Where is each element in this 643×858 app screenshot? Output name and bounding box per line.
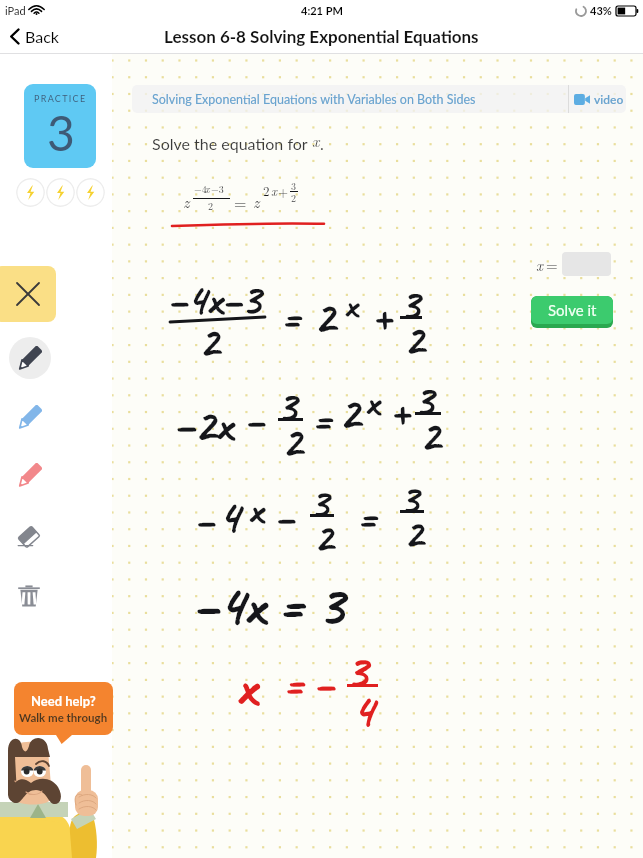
staticText: 3 [47,104,75,162]
button[interactable]: Energy [76,178,105,207]
button[interactable]: Eraser [10,519,48,557]
staticText: x [205,182,210,196]
staticText: 2 [314,511,333,564]
staticText: 3 [400,277,420,332]
staticText: Solving Exponential Equations with Varia… [152,92,476,107]
staticText: x [536,254,543,275]
staticText: 4 [218,486,240,546]
staticText: Walk me through [19,711,108,725]
staticText: 3 [400,473,419,526]
staticText: 2 [404,312,424,367]
staticText: 3 [291,179,296,193]
button[interactable]: Pen [9,396,51,438]
staticText: Solve the equation for [152,134,312,153]
staticText: + [390,383,410,438]
staticText: x [344,282,357,329]
staticText: x [248,483,263,536]
button[interactable]: Pen [9,454,51,496]
button[interactable]: Pen [9,337,51,379]
staticText: – [274,489,294,544]
staticText: 2 [404,507,423,560]
button[interactable]: video [568,85,626,113]
staticText: 4 [352,680,374,741]
staticText: = [357,490,377,545]
staticText: – [313,655,334,713]
button[interactable]: Energy [16,178,45,207]
staticText: –2x [173,394,232,454]
staticText: Lesson 6-8 Solving Exponential Equations [164,26,479,46]
staticText: 3 [277,379,297,434]
staticText: x [365,378,379,428]
staticText: . [320,134,324,153]
staticText: 2 [291,191,296,205]
staticText: 3 [346,641,368,702]
staticText: = [281,290,301,345]
staticText: 2 [420,408,440,463]
button[interactable]: PRACTICE [24,84,96,168]
staticText: + [278,182,289,200]
staticText: Back [25,27,59,46]
button[interactable]: Back [0,20,69,53]
staticText: Need help? [31,693,96,709]
staticText: = [283,655,304,713]
staticText: – [244,392,264,447]
staticText: −4 [194,182,207,196]
staticText: 2 [339,384,360,442]
staticText: 3 [414,373,434,428]
button[interactable]: Energy [46,178,75,207]
button[interactable]: Solve it [531,296,613,324]
staticText: 2 [263,181,270,199]
staticText: z [253,190,260,213]
staticText: –4x = 3 [192,568,345,641]
staticText: video [594,92,624,106]
staticText: 4:21 PM [301,4,343,17]
staticText: x [236,650,256,722]
staticText: z [183,190,190,213]
button[interactable]: Clear all [10,577,48,615]
staticText: 2 [199,314,219,369]
staticText: – [194,492,214,547]
button[interactable]: Need help? [14,682,113,735]
button[interactable]: Close toolbar [0,266,56,322]
staticText: x [271,181,278,199]
staticText: = [234,191,247,214]
staticText: 2 [314,288,335,346]
staticText: = [312,392,332,447]
staticText: 2 [208,199,213,213]
staticText: + [372,288,392,343]
staticText: Solve it [548,301,597,319]
staticText: x [312,129,320,152]
staticText: PRACTICE [34,93,87,104]
staticText: = [546,254,558,275]
staticText: 43% [590,4,612,17]
staticText: −3 [211,182,224,196]
staticText: iPad [5,4,26,17]
staticText: –4x–3 [167,272,261,327]
staticText: 2 [282,414,302,469]
staticText: 3 [310,477,329,530]
